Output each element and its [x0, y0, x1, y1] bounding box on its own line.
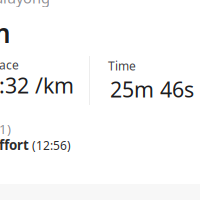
staticText: 5:32 /km [0, 71, 74, 99]
staticText: Elev Gain (1) [0, 120, 11, 138]
staticText: Time [108, 58, 136, 74]
staticText: Mandaluyong [0, 0, 50, 7]
staticText: 25m 46s [110, 75, 194, 103]
staticText: Pace [0, 57, 19, 73]
staticText: 4.28 km [0, 15, 11, 50]
staticText: Best effort (12:56) [0, 136, 71, 154]
